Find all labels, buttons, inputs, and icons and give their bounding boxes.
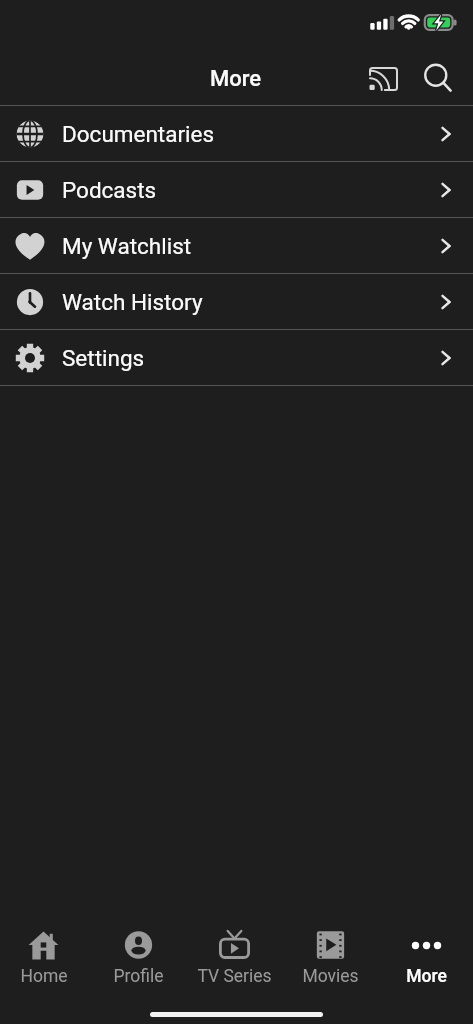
staticText: More xyxy=(406,966,447,987)
button[interactable]: Search xyxy=(416,56,460,100)
button[interactable]: Home xyxy=(0,929,91,990)
button[interactable]: More xyxy=(378,929,473,990)
staticText: Settings xyxy=(62,345,145,371)
button[interactable]: Cast xyxy=(361,57,405,101)
staticText: Movies xyxy=(302,966,359,987)
staticText: TV Series xyxy=(197,966,272,987)
button[interactable]: Watch History xyxy=(0,274,473,329)
staticText: Watch History xyxy=(62,289,203,315)
staticText: Podcasts xyxy=(62,177,157,203)
staticText: Profile xyxy=(113,966,164,987)
button[interactable]: Movies xyxy=(282,929,378,990)
staticText: Home xyxy=(20,966,68,987)
staticText: Documentaries xyxy=(62,121,215,147)
button[interactable]: Profile xyxy=(91,929,186,990)
button[interactable]: Podcasts xyxy=(0,162,473,217)
button[interactable]: Settings xyxy=(0,330,473,385)
staticText: More xyxy=(210,66,262,92)
button[interactable]: Documentaries xyxy=(0,106,473,161)
staticText: My Watchlist xyxy=(62,233,192,259)
button[interactable]: TV Series xyxy=(186,929,282,990)
button[interactable]: My Watchlist xyxy=(0,218,473,273)
